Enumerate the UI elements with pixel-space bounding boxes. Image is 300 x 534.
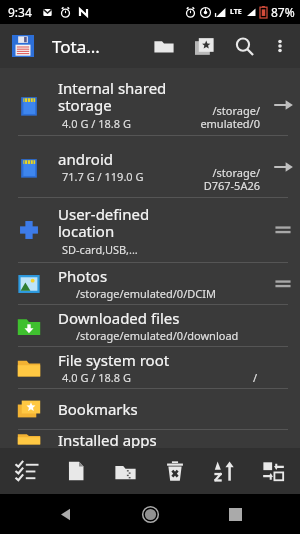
staticText: / [253,370,258,385]
staticText: User-defined location [58,204,150,242]
button[interactable]: Transfer [251,449,295,493]
button[interactable]: Sort [202,449,246,493]
button[interactable]: File system root [0,347,300,388]
button[interactable]: New file [54,449,98,493]
staticText: Internal shared storage [58,78,200,116]
button[interactable]: Bookmarks [0,389,300,429]
staticText: /storage/ D767-5A26 [203,165,260,193]
staticText: android [58,149,113,169]
button[interactable]: Open folder [144,26,184,66]
staticText: /storage/emulated/0/download [76,328,239,343]
staticText: /storage/emulated/0/DCIM [76,286,216,301]
staticText: Tota... [52,35,144,58]
staticText: LTE [230,7,242,17]
staticText: Photos [58,266,108,286]
staticText: 9:34 [8,4,32,20]
staticText: Installed apps [58,430,157,448]
staticText: 4.0 G / 18.8 G [62,370,131,385]
staticText: SD-card,USB,... [62,242,138,257]
staticText: Downloaded files [58,308,180,328]
button[interactable]: Delete [153,449,197,493]
staticText: 4.0 G / 18.8 G [62,116,131,131]
staticText: 87% [271,4,295,20]
staticText: Bookmarks [58,399,138,419]
button[interactable]: Internal shared storage [0,74,300,135]
button[interactable]: android [0,136,300,197]
button[interactable]: Total Commander [10,33,36,59]
button[interactable]: Recents [215,494,255,534]
staticText: /storage/ emulated/0 [200,103,260,131]
button[interactable]: Home [130,494,170,534]
button[interactable]: Bookmarks [184,26,224,66]
button[interactable]: Installed apps [0,430,300,448]
button[interactable]: Zip [103,449,147,493]
button[interactable]: Photos [0,263,300,304]
staticText: File system root [58,350,170,370]
button[interactable]: Back [45,494,85,534]
button[interactable]: More options [264,30,296,62]
button[interactable]: Downloaded files [0,305,300,346]
button[interactable]: Select files [5,449,49,493]
button[interactable]: User-defined location [0,198,300,262]
staticText: 71.7 G / 119.0 G [62,169,144,184]
button[interactable]: Search [224,26,264,66]
